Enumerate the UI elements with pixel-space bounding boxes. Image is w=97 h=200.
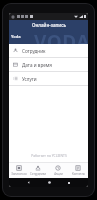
button[interactable]: Back	[27, 181, 30, 184]
button[interactable]: Сотрудники	[28, 163, 48, 178]
staticText: Записаться	[11, 172, 27, 176]
staticText: Yoda	[11, 34, 21, 39]
button[interactable]: Услуги	[9, 72, 88, 85]
staticText: Контакты	[72, 172, 85, 176]
staticText: Онлайн-запись	[32, 22, 66, 28]
button[interactable]: Home	[48, 181, 51, 184]
button[interactable]: Контакты	[68, 163, 88, 178]
button[interactable]: Акции	[48, 163, 68, 178]
staticText: Сотрудник	[22, 48, 46, 54]
staticText: Дата и время	[22, 62, 52, 68]
staticText: Услуги	[22, 76, 37, 82]
staticText: Работает на YCLIENTS	[31, 153, 67, 158]
button[interactable]: Сотрудник	[9, 44, 88, 57]
staticText: VODA	[34, 29, 88, 44]
button[interactable]: Записаться	[9, 163, 28, 178]
staticText: Акции	[54, 172, 63, 176]
staticText: Сотрудники	[30, 172, 46, 176]
button[interactable]: Дата и время	[9, 58, 88, 71]
